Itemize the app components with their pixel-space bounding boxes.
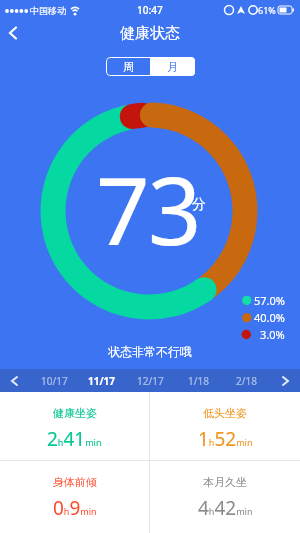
staticText: 10:47: [137, 3, 163, 17]
staticText: 1h52min: [198, 426, 253, 452]
button[interactable]: 1/18: [174, 369, 222, 392]
button[interactable]: 身体前倾: [0, 461, 149, 533]
button[interactable]: 本月久坐: [150, 461, 300, 533]
staticText: 月: [167, 60, 178, 74]
staticText: 11/17: [88, 374, 116, 388]
button[interactable]: 11/17: [78, 369, 126, 392]
staticText: 0h9min: [53, 495, 97, 521]
button[interactable]: 健康坐姿: [0, 392, 149, 460]
staticText: 健康坐姿: [53, 406, 97, 420]
button[interactable]: 10/17: [30, 369, 78, 392]
staticText: 10/17: [41, 374, 68, 388]
button[interactable]: [270, 369, 300, 392]
staticText: 73: [96, 145, 200, 273]
staticText: 周: [123, 60, 134, 74]
staticText: 3.0%: [260, 327, 285, 342]
button[interactable]: [0, 369, 30, 392]
staticText: 低头坐姿: [203, 406, 247, 420]
button[interactable]: 12/17: [126, 369, 174, 392]
staticText: 2h41min: [47, 426, 102, 452]
button[interactable]: 月: [150, 57, 195, 76]
staticText: 状态非常不行哦: [108, 344, 192, 359]
staticText: 中国移动: [30, 5, 66, 16]
staticText: 1/18: [188, 374, 209, 388]
button[interactable]: 低头坐姿: [150, 392, 300, 460]
staticText: 本月久坐: [203, 475, 247, 489]
staticText: 2/18: [236, 374, 257, 388]
button[interactable]: [0, 20, 26, 46]
staticText: 40.0%: [254, 310, 285, 325]
staticText: 12/17: [137, 374, 164, 388]
staticText: 4h42min: [198, 495, 253, 521]
button[interactable]: 周: [106, 57, 150, 76]
staticText: 分: [192, 196, 206, 214]
button[interactable]: 2/18: [222, 369, 270, 392]
staticText: 61%: [258, 4, 276, 16]
staticText: 健康状态: [120, 24, 180, 43]
staticText: 身体前倾: [53, 475, 97, 489]
staticText: 57.0%: [254, 293, 285, 308]
